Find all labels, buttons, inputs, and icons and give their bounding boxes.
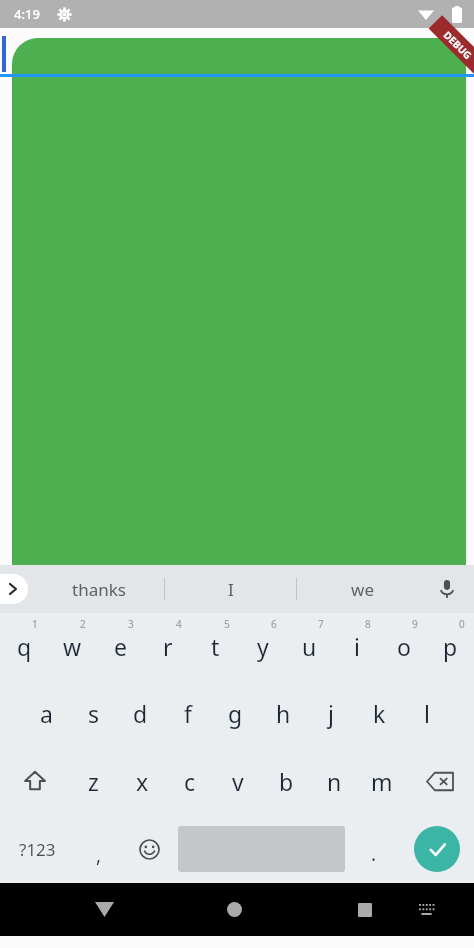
button[interactable]: s — [70, 680, 117, 747]
staticText: f — [184, 698, 192, 729]
staticText: 2 — [80, 617, 86, 631]
staticText: u — [302, 631, 317, 662]
staticText: s — [88, 698, 100, 729]
staticText: 9 — [412, 617, 418, 631]
staticText: y — [257, 631, 269, 662]
button[interactable]: . — [349, 815, 399, 883]
staticText: 6 — [271, 617, 277, 631]
button[interactable]: , — [74, 815, 124, 883]
button[interactable]: Shift — [0, 747, 69, 815]
button[interactable]: we — [297, 565, 428, 613]
staticText: . — [371, 841, 377, 867]
button[interactable]: Voice input — [430, 572, 464, 606]
button[interactable]: c — [166, 747, 214, 815]
button[interactable]: Emoji — [124, 815, 174, 883]
button[interactable]: f — [164, 680, 211, 747]
staticText: thanks — [72, 578, 126, 601]
staticText: o — [397, 631, 411, 662]
button[interactable]: Recents — [332, 883, 397, 936]
staticText: x — [136, 766, 149, 797]
staticText: , — [96, 842, 102, 868]
button[interactable]: ?123 — [0, 815, 74, 883]
button[interactable]: z — [69, 747, 118, 815]
staticText: p — [443, 631, 458, 662]
button[interactable]: o — [380, 613, 427, 680]
staticText: m — [371, 766, 393, 797]
button[interactable]: e — [96, 613, 144, 680]
staticText: k — [373, 698, 386, 729]
staticText: d — [133, 698, 148, 729]
button[interactable]: d — [117, 680, 164, 747]
button[interactable]: g — [211, 680, 259, 747]
button[interactable]: Enter — [414, 826, 460, 872]
staticText: n — [327, 766, 342, 797]
button[interactable]: w — [48, 613, 96, 680]
button[interactable]: a — [23, 680, 70, 747]
button[interactable]: thanks — [34, 565, 164, 613]
button[interactable]: q — [0, 613, 48, 680]
staticText: l — [424, 698, 430, 729]
button[interactable]: Backspace — [406, 747, 474, 815]
staticText: we — [351, 578, 374, 601]
button[interactable]: Keyboard — [397, 883, 455, 936]
button[interactable]: n — [310, 747, 358, 815]
staticText: 5 — [224, 617, 230, 631]
button[interactable]: k — [355, 680, 403, 747]
staticText: 1 — [32, 617, 38, 631]
staticText: t — [211, 631, 220, 662]
staticText: c — [184, 766, 196, 797]
button[interactable]: I — [165, 565, 296, 613]
button[interactable]: t — [192, 613, 239, 680]
button[interactable]: u — [286, 613, 333, 680]
staticText: a — [40, 698, 53, 729]
staticText: 0 — [459, 617, 465, 631]
button[interactable]: Back — [72, 883, 137, 936]
button[interactable]: x — [118, 747, 166, 815]
staticText: ?123 — [19, 838, 56, 861]
button[interactable]: b — [262, 747, 310, 815]
button[interactable]: Expand suggestions — [0, 574, 28, 604]
button[interactable]: p — [427, 613, 474, 680]
button[interactable] — [12, 38, 466, 565]
staticText: j — [328, 698, 334, 729]
staticText: e — [114, 631, 127, 662]
button[interactable]: l — [403, 680, 451, 747]
staticText: I — [228, 578, 234, 601]
staticText: w — [63, 631, 82, 662]
button[interactable]: i — [333, 613, 380, 680]
button[interactable]: v — [214, 747, 262, 815]
staticText: 7 — [318, 617, 324, 631]
staticText: 8 — [365, 617, 371, 631]
staticText: 4:19 — [14, 5, 40, 23]
staticText: 4 — [176, 617, 182, 631]
staticText: q — [17, 631, 32, 662]
staticText: h — [276, 698, 291, 729]
button[interactable]: j — [307, 680, 355, 747]
button[interactable]: h — [259, 680, 307, 747]
staticText: v — [232, 766, 244, 797]
staticText: DEBUG — [441, 28, 474, 62]
staticText: 3 — [128, 617, 134, 631]
button[interactable]: m — [358, 747, 406, 815]
staticText: b — [279, 766, 294, 797]
button[interactable]: Home — [202, 883, 267, 936]
button[interactable]: r — [144, 613, 192, 680]
staticText: r — [163, 631, 173, 662]
staticText: z — [88, 766, 99, 797]
staticText: i — [354, 631, 360, 662]
staticText: g — [228, 698, 243, 729]
button[interactable]: y — [239, 613, 286, 680]
